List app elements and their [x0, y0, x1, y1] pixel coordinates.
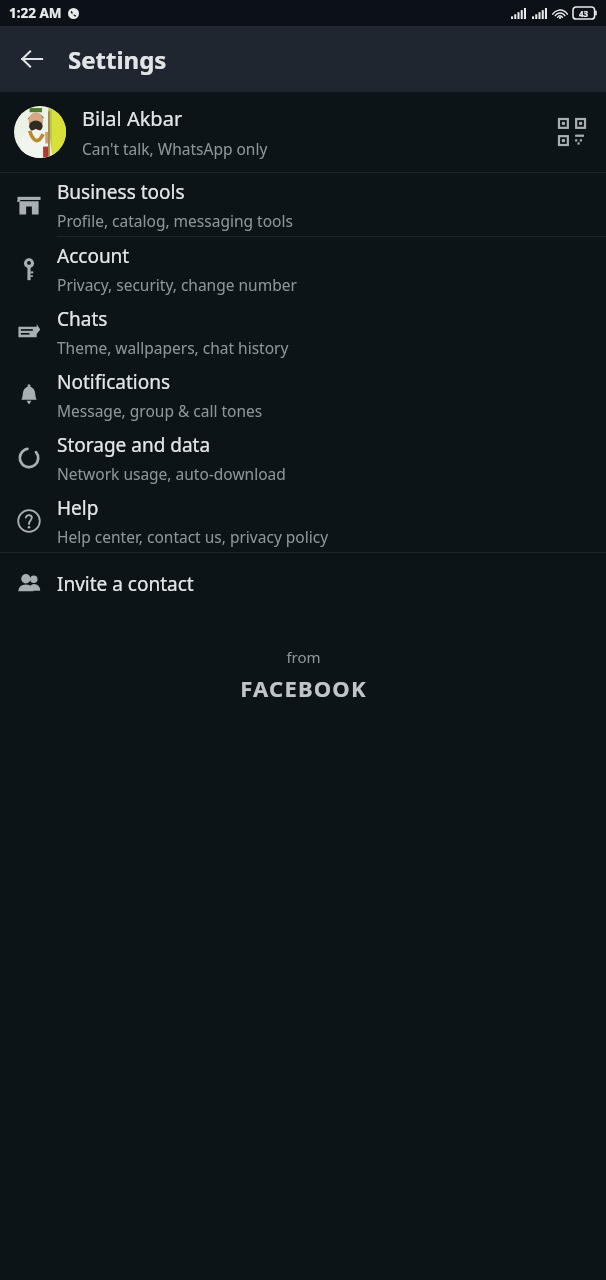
- button[interactable]: Chats: [0, 300, 606, 363]
- staticText: FACEBOOK: [240, 673, 367, 703]
- staticText: Network usage, auto-download: [57, 463, 286, 484]
- staticText: Privacy, security, change number: [57, 274, 297, 295]
- staticText: Storage and data: [57, 432, 211, 458]
- staticText: Invite a contact: [57, 571, 194, 597]
- staticText: Message, group & call tones: [57, 400, 263, 421]
- staticText: Chats: [57, 306, 108, 332]
- button[interactable]: Invite a contact: [0, 553, 606, 615]
- button[interactable]: Help: [0, 489, 606, 552]
- staticText: 1:22 AM: [9, 4, 62, 22]
- staticText: Settings: [68, 43, 167, 76]
- button[interactable]: Storage and data: [0, 426, 606, 489]
- staticText: Business tools: [57, 179, 185, 205]
- staticText: Notifications: [57, 369, 171, 395]
- button[interactable]: Account: [0, 237, 606, 300]
- button[interactable]: Bilal Akbar: [0, 92, 606, 172]
- staticText: 43: [579, 8, 589, 19]
- staticText: Theme, wallpapers, chat history: [57, 337, 289, 358]
- button[interactable]: QR code: [550, 110, 594, 154]
- button[interactable]: Notifications: [0, 363, 606, 426]
- staticText: from: [286, 647, 321, 667]
- staticText: Help center, contact us, privacy policy: [57, 526, 329, 547]
- staticText: Bilal Akbar: [82, 105, 183, 132]
- button[interactable]: Business tools: [0, 173, 606, 236]
- staticText: Account: [57, 243, 130, 269]
- button[interactable]: Back: [8, 35, 56, 83]
- staticText: Profile, catalog, messaging tools: [57, 210, 293, 231]
- staticText: Can't talk, WhatsApp only: [82, 138, 268, 159]
- staticText: Help: [57, 495, 99, 521]
